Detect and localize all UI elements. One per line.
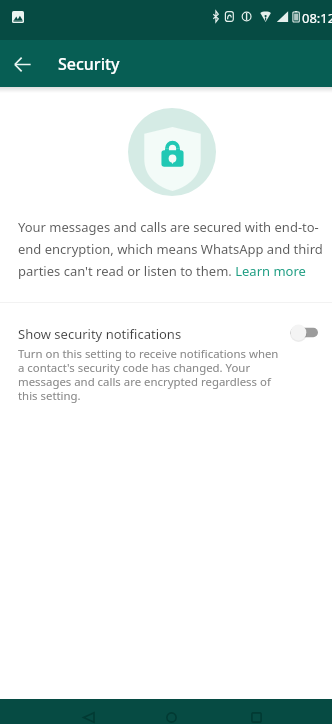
button[interactable]: Home [151, 699, 191, 724]
button[interactable]: Show security notifications toggle [286, 322, 322, 346]
button[interactable]: Recent apps [236, 699, 276, 724]
button[interactable]: Back [4, 46, 40, 82]
button[interactable]: Show security notifications [0, 303, 332, 418]
button[interactable]: Back [68, 699, 108, 724]
staticText: Turn on this setting to receive notifica… [18, 346, 286, 404]
staticText: Your messages and calls are secured with… [18, 218, 326, 280]
staticText: Security [58, 53, 120, 75]
staticText: Show security notifications [18, 325, 182, 343]
staticText: 08:12 [302, 9, 332, 27]
